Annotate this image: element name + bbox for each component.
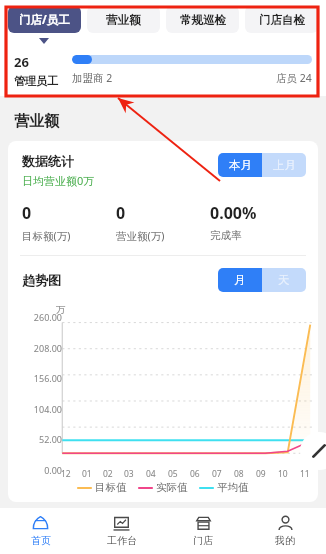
- button[interactable]: 门店: [162, 508, 244, 554]
- staticText: 趋势图: [22, 272, 61, 288]
- staticText: 目标额(万): [22, 229, 71, 243]
- button[interactable]: 上月: [262, 153, 306, 177]
- button[interactable]: 月: [218, 268, 262, 292]
- staticText: 01: [82, 468, 92, 480]
- staticText: 日均营业额0万: [22, 173, 95, 188]
- staticText: 26: [14, 53, 29, 71]
- staticText: 08: [234, 468, 244, 480]
- button[interactable]: 门店自检: [245, 6, 318, 33]
- staticText: 门店自检: [259, 13, 305, 27]
- staticText: 156.00: [22, 372, 62, 384]
- button[interactable]: 营业额: [87, 6, 160, 33]
- staticText: 06: [190, 468, 200, 480]
- staticText: 10: [278, 468, 288, 480]
- staticText: 数据统计: [22, 153, 74, 169]
- staticText: 常规巡检: [180, 13, 226, 27]
- staticText: 104.00: [22, 403, 62, 415]
- staticText: 完成率: [210, 229, 242, 242]
- staticText: 04: [146, 468, 156, 480]
- staticText: 11: [300, 468, 310, 480]
- staticText: 12: [61, 468, 71, 480]
- staticText: 260.00: [22, 311, 62, 323]
- staticText: 0: [116, 202, 126, 224]
- staticText: 本月: [229, 158, 252, 172]
- staticText: 0: [22, 202, 32, 224]
- button[interactable]: 门店/员工: [8, 6, 81, 33]
- button[interactable]: 工作台: [81, 508, 162, 554]
- staticText: 管理员工: [14, 74, 58, 88]
- staticText: 月: [234, 273, 246, 287]
- staticText: 07: [212, 468, 222, 480]
- button[interactable]: 首页: [0, 508, 81, 554]
- staticText: 0.00%: [210, 202, 257, 224]
- staticText: 工作台: [107, 534, 137, 547]
- button[interactable]: 常规巡检: [166, 6, 239, 33]
- staticText: 平均值: [217, 481, 249, 494]
- staticText: 我的: [275, 534, 295, 547]
- staticText: 0.00: [22, 464, 62, 476]
- staticText: 门店: [193, 534, 213, 547]
- button[interactable]: 我的: [244, 508, 326, 554]
- staticText: 02: [103, 468, 113, 480]
- staticText: 营业额(万): [116, 229, 165, 243]
- staticText: 万: [56, 304, 66, 316]
- staticText: 店员 24: [276, 71, 312, 85]
- staticText: 实际值: [156, 481, 188, 494]
- staticText: 门店/员工: [19, 12, 70, 28]
- staticText: 加盟商 2: [72, 71, 113, 85]
- staticText: 09: [256, 468, 266, 480]
- staticText: 52.00: [22, 433, 62, 445]
- staticText: 03: [124, 468, 134, 480]
- staticText: 05: [168, 468, 178, 480]
- staticText: 首页: [31, 534, 51, 547]
- staticText: 目标值: [95, 481, 127, 494]
- button[interactable]: 本月: [218, 153, 262, 177]
- button[interactable]: 天: [262, 268, 306, 292]
- staticText: 208.00: [22, 342, 62, 354]
- staticText: 上月: [273, 158, 296, 172]
- staticText: 营业额: [106, 13, 141, 27]
- staticText: 天: [278, 273, 290, 287]
- button[interactable]: 编辑: [300, 432, 326, 470]
- staticText: 营业额: [14, 112, 59, 131]
